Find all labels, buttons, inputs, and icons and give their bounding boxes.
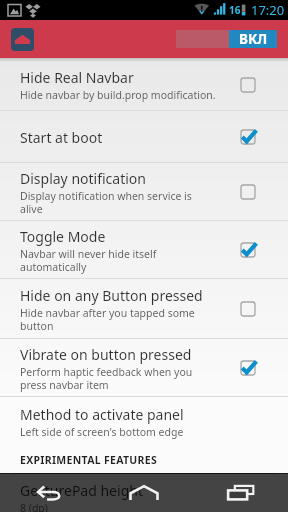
staticText: Navbar will never hide itself automatica… [20, 247, 217, 274]
button[interactable]: GesturePad height [0, 469, 288, 512]
button[interactable]: Start at boot [0, 111, 288, 163]
staticText: Display notification when service is ali… [20, 189, 217, 216]
staticText: Left side of screen's bottom edge [20, 425, 184, 439]
button[interactable]: Home [108, 473, 180, 512]
staticText: 16 [229, 3, 241, 17]
button[interactable]: Method to activate panel [0, 397, 288, 446]
staticText: Display notification [20, 169, 146, 188]
button[interactable]: Display notification [0, 163, 288, 221]
staticText: Hide on any Button pressed [20, 286, 203, 305]
button[interactable]: Enable service [176, 30, 277, 48]
staticText: Hide navbar after you tapped some button [20, 306, 217, 333]
staticText: Hide Real Navbar [20, 68, 134, 87]
staticText: Method to activate panel [20, 405, 184, 424]
button[interactable]: Vibrate on button pressed [0, 339, 288, 397]
button[interactable]: App icon [11, 28, 34, 51]
button[interactable]: Back [13, 473, 85, 512]
button[interactable]: Hide Real Navbar [0, 58, 288, 111]
button[interactable]: Hide on any Button pressed [0, 279, 288, 339]
staticText: Hide navbar by build.prop modification. [20, 88, 216, 102]
button[interactable]: Recent apps [205, 473, 277, 512]
staticText: Toggle Mode [20, 227, 106, 246]
staticText: 8 (dp) [20, 501, 48, 512]
staticText: 17:20 [251, 1, 285, 19]
staticText: Vibrate on button pressed [20, 345, 192, 364]
button[interactable]: Toggle Mode [0, 221, 288, 279]
staticText: ВКЛ [239, 30, 268, 48]
staticText: Perform haptic feedback when you press n… [20, 365, 217, 392]
staticText: Start at boot [20, 128, 103, 147]
staticText: GesturePad height [20, 481, 143, 500]
staticText: EXPIRIMENTAL FEATURES [20, 453, 158, 467]
